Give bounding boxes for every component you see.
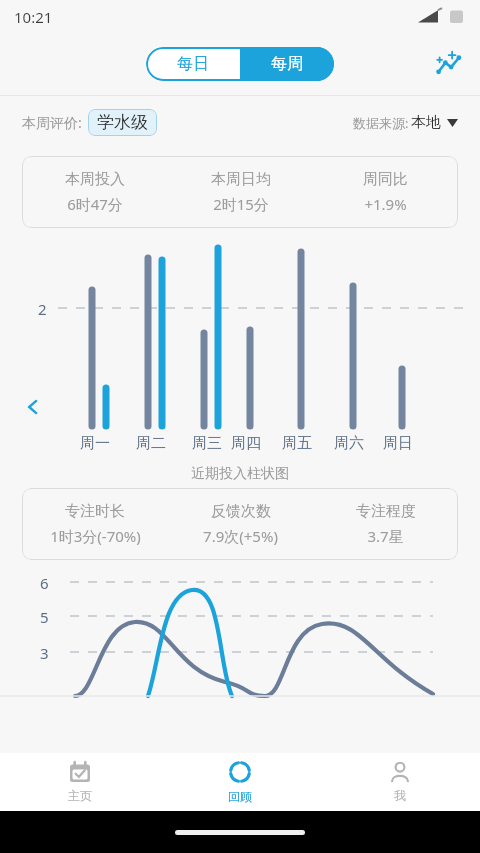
- staticText: 周一: [80, 434, 110, 453]
- button[interactable]: 主页: [0, 753, 160, 811]
- staticText: 专注时长: [65, 502, 125, 521]
- staticText: 6: [40, 573, 49, 593]
- staticText: 专注程度: [356, 502, 416, 521]
- staticText: 数据来源:: [353, 114, 409, 132]
- staticText: 每日: [177, 54, 209, 74]
- staticText: 5: [40, 607, 49, 627]
- button[interactable]: 数据来源:: [353, 113, 458, 132]
- staticText: 3.7星: [367, 526, 404, 546]
- staticText: 近期投入柱状图: [191, 465, 289, 483]
- staticText: 周日: [383, 434, 413, 453]
- button[interactable]: 每日: [146, 47, 240, 81]
- staticText: 每周: [271, 54, 303, 74]
- button[interactable]: 专注时长: [22, 488, 458, 560]
- staticText: 我: [394, 788, 406, 803]
- staticText: 周三: [192, 434, 222, 453]
- staticText: 回顾: [228, 789, 252, 804]
- staticText: 周六: [334, 434, 364, 453]
- staticText: 7.9次(+5%): [203, 526, 278, 546]
- button[interactable]: 每周: [240, 47, 334, 81]
- staticText: 2时15分: [213, 194, 269, 214]
- staticText: 本周投入: [65, 170, 125, 189]
- staticText: 学水级: [97, 112, 148, 133]
- staticText: +1.9%: [364, 194, 407, 214]
- button[interactable]: Previous week: [18, 392, 48, 422]
- staticText: 10:21: [14, 7, 53, 27]
- button[interactable]: 我: [320, 753, 480, 811]
- staticText: 本地: [411, 113, 441, 132]
- staticText: 本周评价:: [22, 113, 82, 132]
- button[interactable]: 学水级: [88, 109, 157, 136]
- staticText: 1时3分(-70%): [50, 526, 141, 546]
- staticText: 3: [40, 643, 49, 663]
- staticText: 主页: [68, 788, 92, 803]
- button[interactable]: Insights chart: [432, 47, 466, 81]
- staticText: 2: [38, 299, 47, 319]
- staticText: 周五: [282, 434, 312, 453]
- staticText: 本周日均: [211, 170, 271, 189]
- staticText: 周四: [231, 434, 261, 453]
- staticText: 周二: [136, 434, 166, 453]
- staticText: 周同比: [363, 170, 408, 189]
- staticText: 6时47分: [67, 194, 123, 214]
- staticText: 反馈次数: [211, 502, 271, 521]
- button[interactable]: 回顾: [160, 753, 320, 811]
- button[interactable]: 本周投入: [22, 156, 458, 228]
